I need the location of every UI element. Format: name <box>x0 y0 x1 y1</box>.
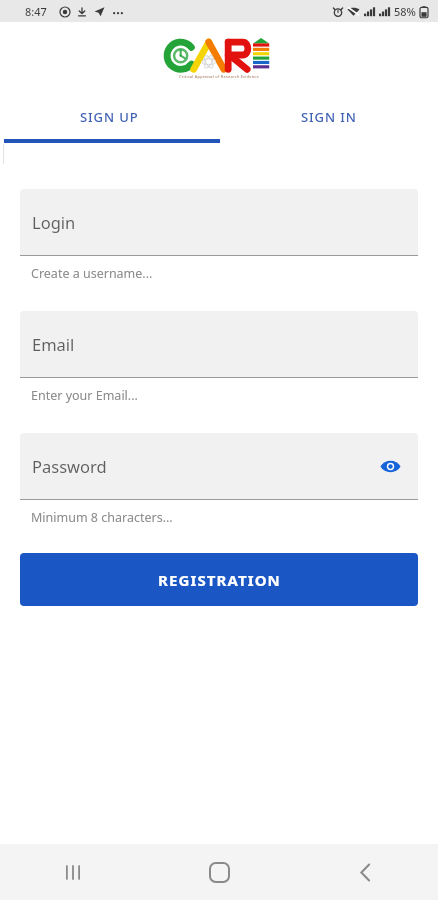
staticText: Login <box>32 211 76 233</box>
button[interactable]: REGISTRATION <box>20 553 418 606</box>
button[interactable]: Login <box>20 189 418 255</box>
staticText: Minimum 8 characters... <box>31 509 173 526</box>
button[interactable]: Recent apps <box>0 844 146 900</box>
button[interactable]: Password <box>20 433 418 499</box>
button[interactable]: Email <box>20 311 418 377</box>
staticText: REGISTRATION <box>158 570 281 590</box>
button[interactable]: SIGN UP <box>0 95 219 139</box>
staticText: Critical Appraisal of Research Evidence <box>179 74 259 79</box>
button[interactable]: Back <box>292 844 438 900</box>
staticText: 58% <box>394 4 416 19</box>
staticText: SIGN UP <box>80 108 139 126</box>
staticText: SIGN IN <box>301 108 357 126</box>
button[interactable]: Home <box>146 844 292 900</box>
staticText: Email <box>32 333 75 355</box>
staticText: Password <box>32 455 107 477</box>
staticText: Enter your Email... <box>31 387 138 404</box>
staticText: Create a username... <box>31 265 153 282</box>
button[interactable]: Show password <box>374 450 406 482</box>
button[interactable]: SIGN IN <box>219 95 438 139</box>
staticText: 8:47 <box>25 4 47 19</box>
